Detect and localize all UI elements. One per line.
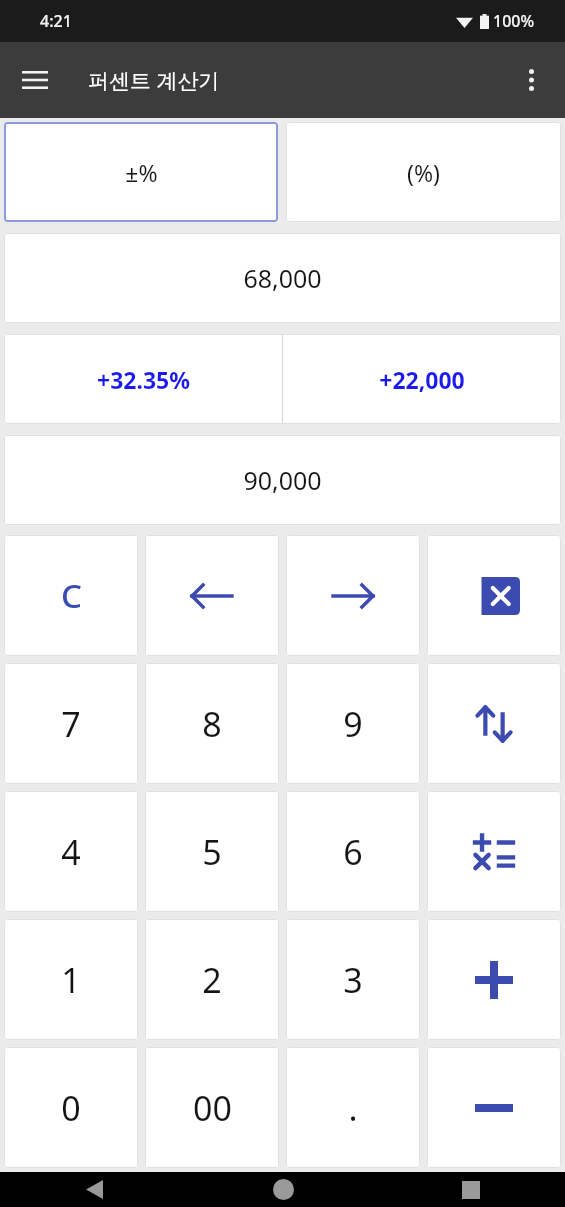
staticText: 100% bbox=[493, 10, 535, 32]
staticText: C bbox=[61, 573, 82, 618]
button[interactable]: Home bbox=[223, 1172, 343, 1207]
button[interactable]: 00 bbox=[145, 1047, 279, 1168]
staticText: 2 bbox=[202, 957, 222, 1003]
button[interactable]: 5 bbox=[145, 791, 279, 912]
staticText: 68,000 bbox=[243, 261, 322, 295]
staticText: 8 bbox=[202, 701, 222, 747]
button[interactable]: 90,000 bbox=[4, 435, 561, 525]
staticText: 5 bbox=[202, 829, 222, 875]
staticText: ±% bbox=[125, 157, 158, 188]
button[interactable]: 1 bbox=[4, 919, 138, 1040]
button[interactable]: . bbox=[286, 1047, 420, 1168]
staticText: 90,000 bbox=[243, 463, 322, 497]
staticText: 7 bbox=[61, 701, 81, 747]
button[interactable]: Recents bbox=[377, 1172, 565, 1207]
button[interactable]: Back bbox=[0, 1172, 188, 1207]
button[interactable]: 2 bbox=[145, 919, 279, 1040]
staticText: +22,000 bbox=[379, 364, 465, 395]
button[interactable]: Minus bbox=[427, 1047, 561, 1168]
button[interactable]: 3 bbox=[286, 919, 420, 1040]
button[interactable]: 7 bbox=[4, 663, 138, 784]
button[interactable]: Operations bbox=[427, 791, 561, 912]
button[interactable]: 8 bbox=[145, 663, 279, 784]
button[interactable]: Plus bbox=[427, 919, 561, 1040]
button[interactable]: 9 bbox=[286, 663, 420, 784]
staticText: 4 bbox=[61, 829, 81, 875]
staticText: 1 bbox=[61, 957, 81, 1003]
button[interactable]: C bbox=[4, 535, 138, 656]
button[interactable]: More options bbox=[509, 58, 553, 102]
button[interactable]: (%) bbox=[286, 122, 561, 222]
button[interactable]: 4 bbox=[4, 791, 138, 912]
button[interactable]: 0 bbox=[4, 1047, 138, 1168]
staticText: 4:21 bbox=[40, 10, 72, 32]
staticText: 00 bbox=[193, 1085, 232, 1131]
button[interactable]: Backspace bbox=[427, 535, 561, 656]
button[interactable]: Move right bbox=[286, 535, 420, 656]
staticText: 0 bbox=[61, 1085, 81, 1131]
staticText: (%) bbox=[407, 157, 440, 188]
button[interactable]: 68,000 bbox=[4, 233, 561, 323]
button[interactable]: 6 bbox=[286, 791, 420, 912]
button[interactable]: Menu bbox=[14, 59, 56, 101]
staticText: 퍼센트 계산기 bbox=[88, 66, 220, 95]
button[interactable]: +32.35% bbox=[4, 334, 561, 424]
button[interactable]: Move left bbox=[145, 535, 279, 656]
staticText: 9 bbox=[343, 701, 363, 747]
staticText: . bbox=[348, 1085, 358, 1131]
button[interactable]: Swap values bbox=[427, 663, 561, 784]
staticText: +32.35% bbox=[97, 364, 190, 395]
staticText: 6 bbox=[343, 829, 363, 875]
staticText: 3 bbox=[343, 957, 363, 1003]
button[interactable]: ±% bbox=[4, 122, 278, 222]
